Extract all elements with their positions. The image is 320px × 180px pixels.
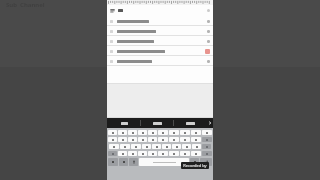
button[interactable]	[169, 151, 179, 156]
button[interactable]	[107, 36, 213, 46]
button[interactable]	[190, 158, 199, 166]
button[interactable]	[148, 130, 157, 135]
button[interactable]	[158, 151, 168, 156]
button[interactable]	[158, 137, 168, 142]
button[interactable]	[119, 158, 128, 166]
button[interactable]	[118, 151, 127, 156]
staticText: Recorded by	[183, 163, 207, 168]
button[interactable]: More options	[207, 9, 210, 12]
button[interactable]: More suggestions	[207, 118, 213, 128]
button[interactable]	[148, 151, 157, 156]
button[interactable]	[107, 16, 213, 26]
button[interactable]	[138, 137, 147, 142]
button[interactable]	[202, 151, 212, 156]
button[interactable]	[142, 144, 151, 149]
button[interactable]	[108, 158, 118, 166]
button[interactable]	[202, 130, 212, 135]
button[interactable]	[169, 137, 179, 142]
button[interactable]	[148, 137, 157, 142]
button[interactable]	[107, 46, 213, 56]
button[interactable]	[158, 130, 168, 135]
button[interactable]	[180, 151, 190, 156]
button[interactable]	[107, 26, 213, 36]
button[interactable]	[169, 130, 179, 135]
button[interactable]	[107, 56, 213, 66]
button[interactable]	[120, 144, 130, 149]
button[interactable]	[128, 151, 137, 156]
button[interactable]	[192, 144, 201, 149]
button[interactable]	[202, 137, 212, 142]
button[interactable]	[107, 118, 141, 128]
button[interactable]	[191, 130, 201, 135]
button[interactable]	[108, 151, 117, 156]
button[interactable]	[180, 137, 190, 142]
button[interactable]	[180, 130, 190, 135]
button[interactable]	[118, 137, 127, 142]
button[interactable]	[191, 151, 201, 156]
button[interactable]	[182, 144, 191, 149]
button[interactable]: Enter	[200, 158, 212, 166]
button[interactable]	[162, 144, 171, 149]
button[interactable]	[108, 130, 117, 135]
button[interactable]	[131, 144, 141, 149]
button[interactable]	[109, 144, 119, 149]
button[interactable]	[202, 144, 211, 149]
button[interactable]	[141, 118, 174, 128]
button[interactable]	[138, 130, 147, 135]
button[interactable]	[191, 137, 201, 142]
button[interactable]	[174, 118, 207, 128]
button[interactable]	[139, 158, 189, 166]
button[interactable]	[128, 130, 137, 135]
button[interactable]	[128, 137, 137, 142]
other: Back	[110, 8, 115, 13]
button[interactable]	[138, 151, 147, 156]
button[interactable]	[118, 130, 127, 135]
button[interactable]	[152, 144, 161, 149]
button[interactable]: Back	[107, 5, 213, 16]
button[interactable]: Voice input	[129, 158, 138, 166]
button[interactable]	[172, 144, 181, 149]
button[interactable]	[108, 137, 117, 142]
